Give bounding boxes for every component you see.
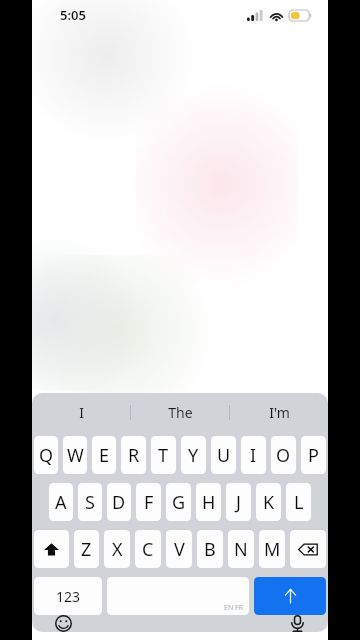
button[interactable]: Z [74,530,99,568]
staticText: S [85,490,95,515]
staticText: G [172,490,186,515]
staticText: U [217,443,231,468]
staticText: EN FR [224,603,244,613]
staticText: Q [39,443,54,468]
button[interactable]: F [136,483,161,521]
button[interactable]: Y [181,436,206,474]
staticText: 5:05 [60,6,86,24]
button[interactable]: C [135,530,161,568]
button[interactable]: S [78,483,102,521]
staticText: P [308,443,319,468]
staticText: L [294,490,304,515]
button[interactable]: Shift [34,530,69,568]
staticText: A [55,490,67,515]
button[interactable]: Space [107,577,249,615]
button[interactable]: M [259,530,285,568]
button[interactable]: Send [254,577,326,615]
button[interactable]: A [49,483,73,521]
button[interactable]: I [241,436,266,474]
staticText: E [99,443,110,468]
button[interactable]: Emoji [46,615,80,632]
staticText: J [236,490,241,515]
button[interactable]: Dictation [280,615,314,632]
staticText: N [234,537,248,562]
button[interactable]: Q [34,436,58,474]
staticText: O [276,443,291,468]
staticText: V [174,537,185,562]
button[interactable]: U [211,436,236,474]
staticText: I'm [269,403,290,422]
staticText: 123 [56,587,81,606]
staticText: F [144,490,154,515]
button[interactable]: 123 [34,577,102,615]
staticText: R [128,443,140,468]
button[interactable]: V [166,530,192,568]
button[interactable]: I'm [230,393,328,431]
button[interactable]: N [228,530,254,568]
button[interactable]: T [151,436,176,474]
button[interactable]: H [196,483,221,521]
staticText: C [142,537,154,562]
staticText: X [112,537,123,562]
staticText: W [67,443,84,468]
staticText: H [202,490,216,515]
button[interactable]: O [271,436,296,474]
button[interactable]: D [107,483,131,521]
button[interactable]: E [92,436,116,474]
button[interactable]: P [301,436,326,474]
staticText: The [168,403,193,422]
button[interactable]: Backspace [290,530,326,568]
staticText: Y [188,443,199,468]
button[interactable]: G [166,483,191,521]
staticText: I [250,443,257,468]
staticText: D [112,490,126,515]
button[interactable]: X [104,530,130,568]
staticText: Z [81,537,92,562]
button[interactable]: L [286,483,311,521]
button[interactable]: W [63,436,87,474]
staticText: B [204,537,216,562]
button[interactable]: B [197,530,223,568]
button[interactable]: I [32,393,130,431]
staticText: M [264,537,281,562]
staticText: I [79,403,84,422]
staticText: K [263,490,275,515]
button[interactable]: The [131,393,229,431]
staticText: T [158,443,169,468]
button[interactable]: J [226,483,251,521]
button[interactable]: R [121,436,146,474]
button[interactable]: K [256,483,281,521]
